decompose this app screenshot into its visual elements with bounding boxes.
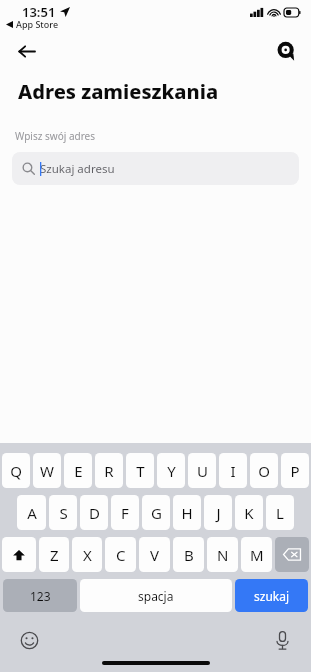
staticText: E <box>74 461 83 481</box>
staticText: Adres zamieszkania <box>18 78 219 105</box>
staticText: G <box>151 503 162 523</box>
button[interactable]: W <box>33 453 61 488</box>
button[interactable]: Backspace <box>275 537 309 572</box>
staticText: K <box>244 503 254 523</box>
button[interactable]: E <box>64 453 92 488</box>
button[interactable]: Z <box>39 537 69 572</box>
staticText: H <box>181 503 193 523</box>
staticText: X <box>83 545 92 565</box>
staticText: L <box>276 503 284 523</box>
staticText: M <box>250 545 264 565</box>
button[interactable]: D <box>80 495 108 530</box>
button[interactable]: V <box>139 537 170 572</box>
staticText: P <box>290 461 300 481</box>
staticText: R <box>104 461 114 481</box>
button[interactable]: Dictation <box>269 627 295 653</box>
button[interactable]: J <box>204 495 232 530</box>
button[interactable]: C <box>105 537 136 572</box>
staticText: O <box>258 461 270 481</box>
staticText: A <box>27 503 37 523</box>
button[interactable]: L <box>266 495 294 530</box>
button[interactable]: H <box>173 495 201 530</box>
staticText: Y <box>167 461 176 481</box>
staticText: C <box>116 545 126 565</box>
staticText: I <box>230 461 236 481</box>
button[interactable]: Szukaj adresu <box>12 152 299 185</box>
staticText: F <box>121 503 129 523</box>
staticText: S <box>59 503 68 523</box>
staticText: Szukaj adresu <box>40 161 115 177</box>
staticText: Q <box>10 461 22 481</box>
button[interactable]: I <box>219 453 247 488</box>
staticText: szukaj <box>254 588 290 604</box>
button[interactable]: Emoji <box>16 627 42 653</box>
button[interactable]: K <box>235 495 263 530</box>
button[interactable]: O <box>250 453 278 488</box>
button[interactable]: Help <box>271 36 301 66</box>
staticText: T <box>136 461 145 481</box>
button[interactable]: Y <box>157 453 185 488</box>
button[interactable]: P <box>281 453 309 488</box>
staticText: D <box>89 503 100 523</box>
staticText: Z <box>50 545 59 565</box>
button[interactable]: B <box>173 537 204 572</box>
button[interactable]: szukaj <box>235 579 308 612</box>
staticText: 123 <box>30 588 51 604</box>
staticText: Wpisz swój adres <box>15 129 96 143</box>
staticText: V <box>150 545 160 565</box>
button[interactable]: A <box>17 495 46 530</box>
button[interactable]: G <box>142 495 170 530</box>
staticText: N <box>217 545 229 565</box>
button[interactable]: N <box>207 537 238 572</box>
button[interactable]: F <box>111 495 139 530</box>
button[interactable]: spacja <box>80 579 232 612</box>
button[interactable]: 123 <box>3 579 77 612</box>
button[interactable]: Shift <box>2 537 36 572</box>
button[interactable]: X <box>72 537 102 572</box>
staticText: spacja <box>138 588 174 604</box>
button[interactable]: T <box>126 453 154 488</box>
button[interactable]: M <box>241 537 272 572</box>
button[interactable]: R <box>95 453 123 488</box>
staticText: App Store <box>16 18 59 30</box>
button[interactable]: U <box>188 453 216 488</box>
staticText: U <box>197 461 208 481</box>
button[interactable]: Back <box>10 36 42 66</box>
staticText: 13:51 <box>22 3 56 21</box>
button[interactable]: S <box>49 495 77 530</box>
button[interactable]: Q <box>2 453 30 488</box>
staticText: J <box>216 503 221 523</box>
staticText: W <box>40 461 54 481</box>
staticText: B <box>184 545 194 565</box>
